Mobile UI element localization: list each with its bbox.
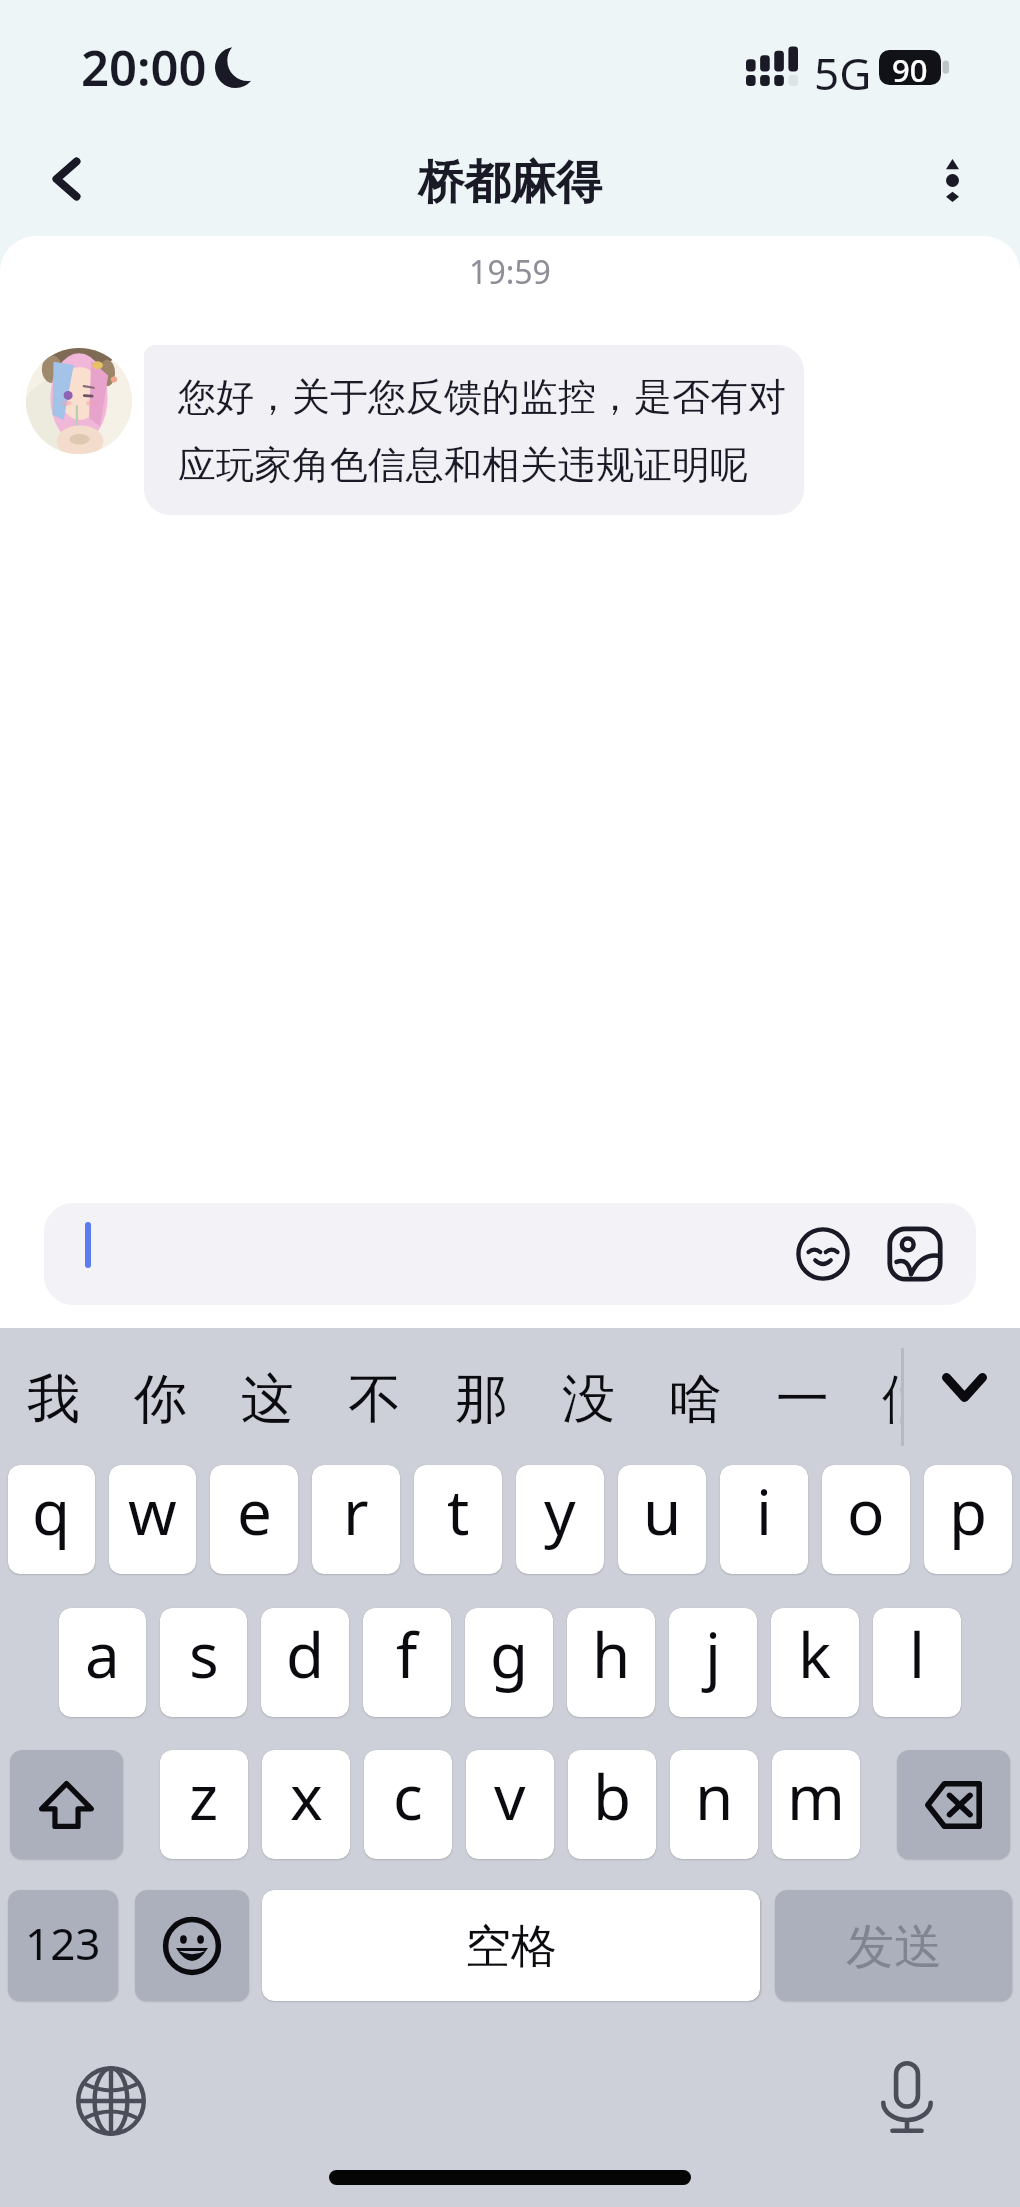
staticText: 19:59 — [0, 250, 1020, 294]
button[interactable]: Backspace — [897, 1750, 1010, 1859]
staticText: r — [343, 1469, 369, 1553]
button[interactable]: 发送 — [775, 1890, 1012, 2001]
staticText: 一 — [776, 1366, 829, 1433]
button[interactable]: e — [210, 1465, 298, 1574]
staticText: 发送 — [846, 1917, 942, 1977]
button[interactable]: More options — [912, 140, 992, 220]
button[interactable]: a — [59, 1608, 146, 1717]
button[interactable]: Avatar — [26, 348, 132, 454]
staticText: s — [189, 1612, 219, 1696]
button[interactable]: 们 — [882, 1328, 903, 1465]
staticText: p — [949, 1469, 988, 1553]
staticText: 不 — [348, 1366, 401, 1433]
button[interactable]: j — [669, 1608, 757, 1717]
button[interactable]: 你 — [107, 1328, 213, 1465]
staticText: o — [847, 1469, 885, 1553]
staticText: 123 — [25, 1913, 101, 1973]
button[interactable]: 不 — [321, 1328, 427, 1465]
staticText: 那 — [455, 1366, 508, 1433]
button[interactable]: 那 — [428, 1328, 534, 1465]
button[interactable]: 啥 — [642, 1328, 748, 1465]
staticText: a — [85, 1612, 120, 1696]
button[interactable]: i — [720, 1465, 808, 1574]
button[interactable]: x — [262, 1750, 350, 1859]
button[interactable]: k — [771, 1608, 859, 1717]
button[interactable]: 我 — [0, 1328, 106, 1465]
button[interactable]: Change keyboard — [71, 2061, 151, 2141]
staticText: j — [705, 1612, 721, 1696]
button[interactable]: r — [312, 1465, 400, 1574]
staticText: v — [494, 1754, 526, 1838]
staticText: d — [286, 1612, 325, 1696]
staticText: q — [32, 1469, 71, 1553]
staticText: b — [593, 1754, 632, 1838]
staticText: h — [592, 1612, 631, 1696]
button[interactable]: 这 — [214, 1328, 320, 1465]
button[interactable]: s — [160, 1608, 247, 1717]
button[interactable]: 没 — [535, 1328, 641, 1465]
staticText: 20:00 — [81, 34, 207, 101]
button[interactable]: Shift — [10, 1750, 123, 1859]
staticText: f — [396, 1612, 418, 1696]
staticText: 我 — [27, 1366, 80, 1433]
button[interactable]: Emoji — [44, 1203, 976, 1305]
button[interactable]: y — [516, 1465, 604, 1574]
button[interactable]: p — [924, 1465, 1012, 1574]
staticText: x — [290, 1754, 323, 1838]
button[interactable]: Emoji — [788, 1219, 858, 1289]
button[interactable]: Hide suggestions — [924, 1319, 1004, 1456]
button[interactable]: 空格 — [262, 1890, 760, 2001]
staticText: t — [447, 1469, 470, 1553]
button[interactable]: Emoji keyboard — [135, 1890, 249, 2001]
button[interactable]: t — [414, 1465, 502, 1574]
button[interactable]: 123 — [8, 1890, 118, 2001]
button[interactable]: g — [465, 1608, 553, 1717]
button[interactable]: b — [568, 1750, 656, 1859]
button[interactable]: Back — [26, 139, 106, 219]
button[interactable]: 一 — [749, 1328, 855, 1465]
button[interactable]: l — [873, 1608, 961, 1717]
staticText: 没 — [562, 1366, 615, 1433]
button[interactable]: u — [618, 1465, 706, 1574]
staticText: k — [798, 1612, 832, 1696]
button[interactable]: Photos — [880, 1219, 950, 1289]
staticText: c — [393, 1754, 423, 1838]
button[interactable]: w — [109, 1465, 196, 1574]
staticText: n — [695, 1754, 734, 1838]
staticText: 啥 — [669, 1366, 722, 1433]
staticText: y — [544, 1469, 576, 1553]
staticText: e — [237, 1469, 272, 1553]
staticText: z — [189, 1754, 219, 1838]
button[interactable]: m — [772, 1750, 860, 1859]
button[interactable]: 您好，关于您反馈的监控，是否有对应玩家角色信息和相关违规证明呢 — [144, 345, 804, 515]
staticText: 们 — [882, 1366, 903, 1433]
staticText: 90 — [892, 49, 928, 84]
button[interactable]: q — [8, 1465, 95, 1574]
button[interactable]: h — [567, 1608, 655, 1717]
staticText: m — [787, 1754, 845, 1838]
button[interactable]: n — [670, 1750, 758, 1859]
button[interactable]: d — [261, 1608, 349, 1717]
staticText: 您好，关于您反馈的监控，是否有对应玩家角色信息和相关违规证明呢 — [178, 373, 788, 489]
staticText: 这 — [241, 1366, 294, 1433]
button[interactable]: z — [160, 1750, 248, 1859]
staticText: u — [643, 1469, 682, 1553]
staticText: 5G — [814, 43, 872, 103]
staticText: l — [909, 1612, 925, 1696]
button[interactable]: o — [822, 1465, 910, 1574]
button[interactable]: Dictation — [867, 2057, 947, 2137]
staticText: w — [128, 1469, 177, 1553]
staticText: 桥都麻得 — [418, 154, 602, 212]
button[interactable]: f — [363, 1608, 451, 1717]
staticText: g — [490, 1612, 529, 1696]
staticText: 空格 — [465, 1918, 557, 1976]
button[interactable]: c — [364, 1750, 452, 1859]
staticText: i — [756, 1469, 772, 1553]
staticText: 你 — [134, 1366, 187, 1433]
button[interactable]: v — [466, 1750, 554, 1859]
